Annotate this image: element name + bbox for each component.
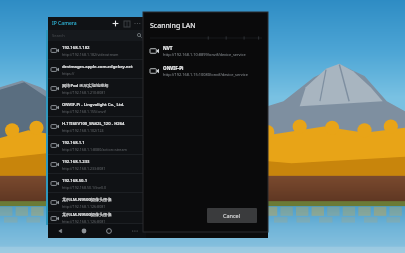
button[interactable]: More bbox=[121, 224, 146, 238]
button[interactable]: devimages.apple.com.edgekey.net bbox=[48, 60, 146, 79]
button[interactable]: Cancel bbox=[207, 208, 257, 223]
staticText: http://192.168.50.1/live0.0 bbox=[62, 185, 107, 190]
button[interactable]: Add camera bbox=[110, 18, 121, 29]
button[interactable]: Recent apps bbox=[96, 224, 121, 238]
button[interactable]: Back bbox=[48, 224, 72, 238]
button[interactable]: 某的LM-N9500摄像头图像 bbox=[48, 193, 146, 212]
staticText: http://192.168.1.155/onvif bbox=[62, 109, 106, 114]
staticText: 某的LM-N9500摄像头图像 bbox=[62, 212, 112, 218]
staticText: ONVIF-Pi bbox=[163, 65, 184, 71]
staticText: H.1TI6EV100_SN42L_120 - H264 bbox=[62, 121, 125, 127]
staticText: http://192.168.1.1:8080/action=stream bbox=[62, 147, 127, 152]
staticText: Scanning LAN bbox=[150, 21, 196, 31]
staticText: http://192.168.1.182/videostream bbox=[62, 52, 119, 57]
button[interactable]: NVT bbox=[150, 44, 262, 58]
staticText: 192.168.50.1 bbox=[62, 178, 88, 184]
button[interactable]: H.1TI6EV100_SN42L_120 - H264 bbox=[48, 117, 146, 136]
button[interactable]: 某的LM-N9500摄像头图像 bbox=[48, 212, 146, 224]
button[interactable]: 192.168.1.233 bbox=[48, 155, 146, 174]
staticText: devimages.apple.com.edgekey.net bbox=[62, 64, 133, 70]
staticText: 192.168.1.233 bbox=[62, 159, 90, 165]
staticText: http://192.168.1.102/124 bbox=[62, 128, 104, 133]
staticText: http://192.168.1.15:10080/onvif/device_s… bbox=[163, 72, 248, 77]
staticText: http://192.168.1.126:8081 bbox=[62, 219, 106, 224]
staticText: http://192.168.1.126:8081 bbox=[62, 204, 106, 209]
staticText: 网络Pod 无放实现地移相 bbox=[62, 83, 109, 89]
staticText: IP Camera bbox=[52, 20, 77, 27]
button[interactable]: 192.168.50.1 bbox=[48, 174, 146, 193]
staticText: ONVIF-Pi - Lingvolight Co., Ltd. bbox=[62, 102, 125, 108]
button[interactable]: Search bbox=[48, 30, 146, 41]
staticText: NVT bbox=[163, 45, 173, 51]
staticText: http://192.168.1.10:8899/onvif/device_se… bbox=[163, 52, 246, 57]
staticText: https:// bbox=[62, 71, 75, 76]
button[interactable]: More options bbox=[132, 18, 143, 29]
button[interactable]: 192.168.1.1 bbox=[48, 136, 146, 155]
staticText: 192.168.1.1 bbox=[62, 140, 85, 146]
staticText: 某的LM-N9500摄像头图像 bbox=[62, 197, 112, 203]
button[interactable]: 192.168.1.182 bbox=[48, 41, 146, 60]
button[interactable]: 网络Pod 无放实现地移相 bbox=[48, 79, 146, 98]
staticText: http://192.168.1.210:8081 bbox=[62, 90, 106, 95]
button[interactable]: ONVIF-Pi bbox=[150, 64, 262, 78]
staticText: Search bbox=[52, 33, 65, 38]
staticText: 192.168.1.182 bbox=[62, 45, 90, 51]
button[interactable]: ONVIF-Pi - Lingvolight Co., Ltd. bbox=[48, 98, 146, 117]
staticText: http://192.168.1.233:8081 bbox=[62, 166, 106, 171]
button[interactable]: Home bbox=[72, 224, 96, 238]
staticText: Cancel bbox=[223, 212, 241, 219]
button[interactable]: Grid view bbox=[121, 18, 132, 29]
